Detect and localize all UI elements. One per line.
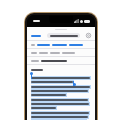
button[interactable] — [27, 57, 95, 64]
button[interactable]: Settings — [85, 32, 92, 39]
button[interactable] — [31, 76, 91, 120]
button[interactable] — [27, 41, 95, 48]
button[interactable] — [30, 34, 42, 38]
button[interactable] — [47, 33, 80, 38]
button[interactable] — [27, 49, 95, 56]
